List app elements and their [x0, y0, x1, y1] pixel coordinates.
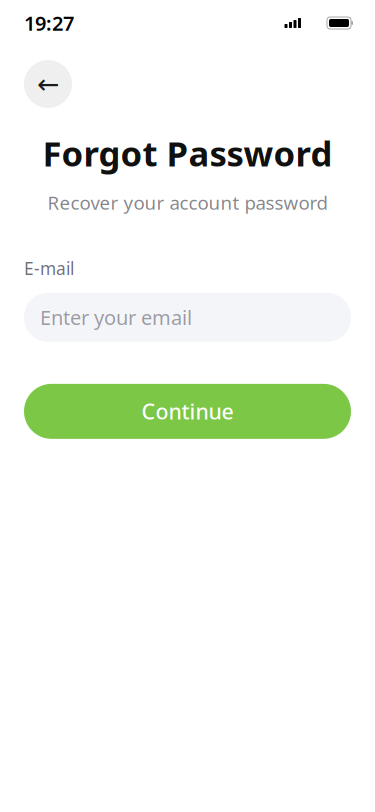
staticText: 19:27 — [24, 10, 74, 36]
staticText: Continue — [141, 397, 233, 425]
staticText: Enter your email — [40, 304, 192, 331]
button[interactable]: Continue — [24, 384, 351, 439]
staticText: E-mail — [24, 257, 74, 280]
staticText: Forgot Password — [42, 130, 332, 176]
button[interactable]: Back — [24, 60, 72, 108]
staticText: Recover your account password — [47, 190, 327, 215]
staticText: ← — [37, 69, 59, 99]
